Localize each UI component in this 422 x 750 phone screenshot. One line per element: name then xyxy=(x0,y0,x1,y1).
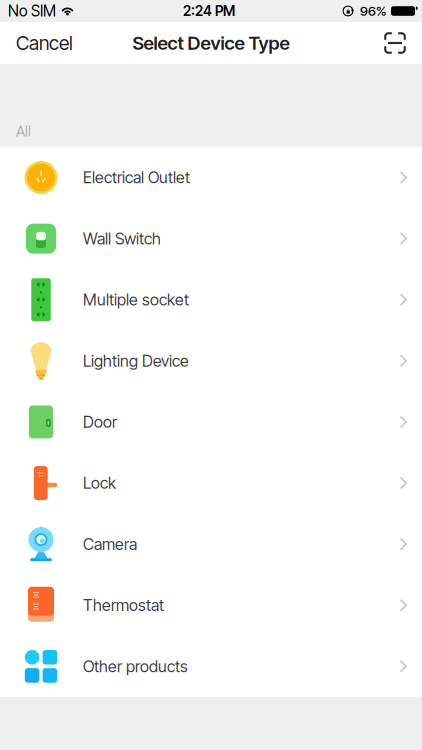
staticText: Electrical Outlet xyxy=(83,168,190,187)
button[interactable]: Lighting Device xyxy=(0,330,422,391)
staticText: Wall Switch xyxy=(83,229,161,248)
staticText: Camera xyxy=(83,534,137,554)
staticText: 2:24 PM xyxy=(183,2,235,19)
button[interactable]: Thermostat xyxy=(0,575,422,636)
staticText: No SIM xyxy=(8,2,56,20)
button[interactable]: Lock xyxy=(0,452,422,514)
staticText: Cancel xyxy=(16,31,73,55)
staticText: Multiple socket xyxy=(83,290,189,309)
button[interactable]: Electrical Outlet xyxy=(0,147,422,208)
staticText: Other products xyxy=(83,657,188,676)
staticText: Select Device Type xyxy=(132,32,289,54)
button[interactable]: Scan code xyxy=(369,22,422,64)
staticText: Lock xyxy=(83,473,116,493)
staticText: Lighting Device xyxy=(83,351,189,371)
staticText: All xyxy=(16,122,31,140)
staticText: Thermostat xyxy=(83,596,164,615)
button[interactable]: Cancel xyxy=(0,22,87,64)
button[interactable]: Wall Switch xyxy=(0,208,422,269)
staticText: 96% xyxy=(360,3,386,19)
staticText: Door xyxy=(83,412,117,432)
button[interactable]: Multiple socket xyxy=(0,269,422,330)
button[interactable]: Camera xyxy=(0,514,422,575)
button[interactable]: Door xyxy=(0,391,422,452)
button[interactable]: Other products xyxy=(0,636,422,697)
